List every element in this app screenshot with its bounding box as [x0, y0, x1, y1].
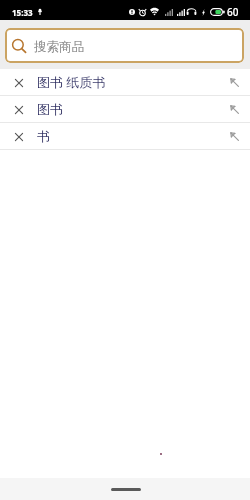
button[interactable]: Delete history item: [0, 123, 37, 149]
staticText: 图书: [37, 101, 63, 117]
button[interactable]: Delete history item: [0, 96, 37, 122]
staticText: 15:33: [12, 7, 33, 18]
button[interactable]: Home: [111, 488, 141, 491]
staticText: 60: [227, 5, 239, 19]
button[interactable]: 搜索商品: [5, 28, 244, 63]
staticText: 搜索商品: [34, 39, 84, 55]
staticText: 图书 纸质书: [37, 73, 106, 91]
staticText: 书: [37, 128, 50, 144]
button[interactable]: Use this search term: [221, 69, 247, 95]
button[interactable]: Use this search term: [221, 96, 247, 122]
button[interactable]: Use this search term: [221, 123, 247, 149]
button[interactable]: Delete history item: [0, 96, 250, 123]
button[interactable]: Delete history item: [0, 69, 37, 95]
button[interactable]: Delete history item: [0, 123, 250, 150]
button[interactable]: Delete history item: [0, 69, 250, 96]
